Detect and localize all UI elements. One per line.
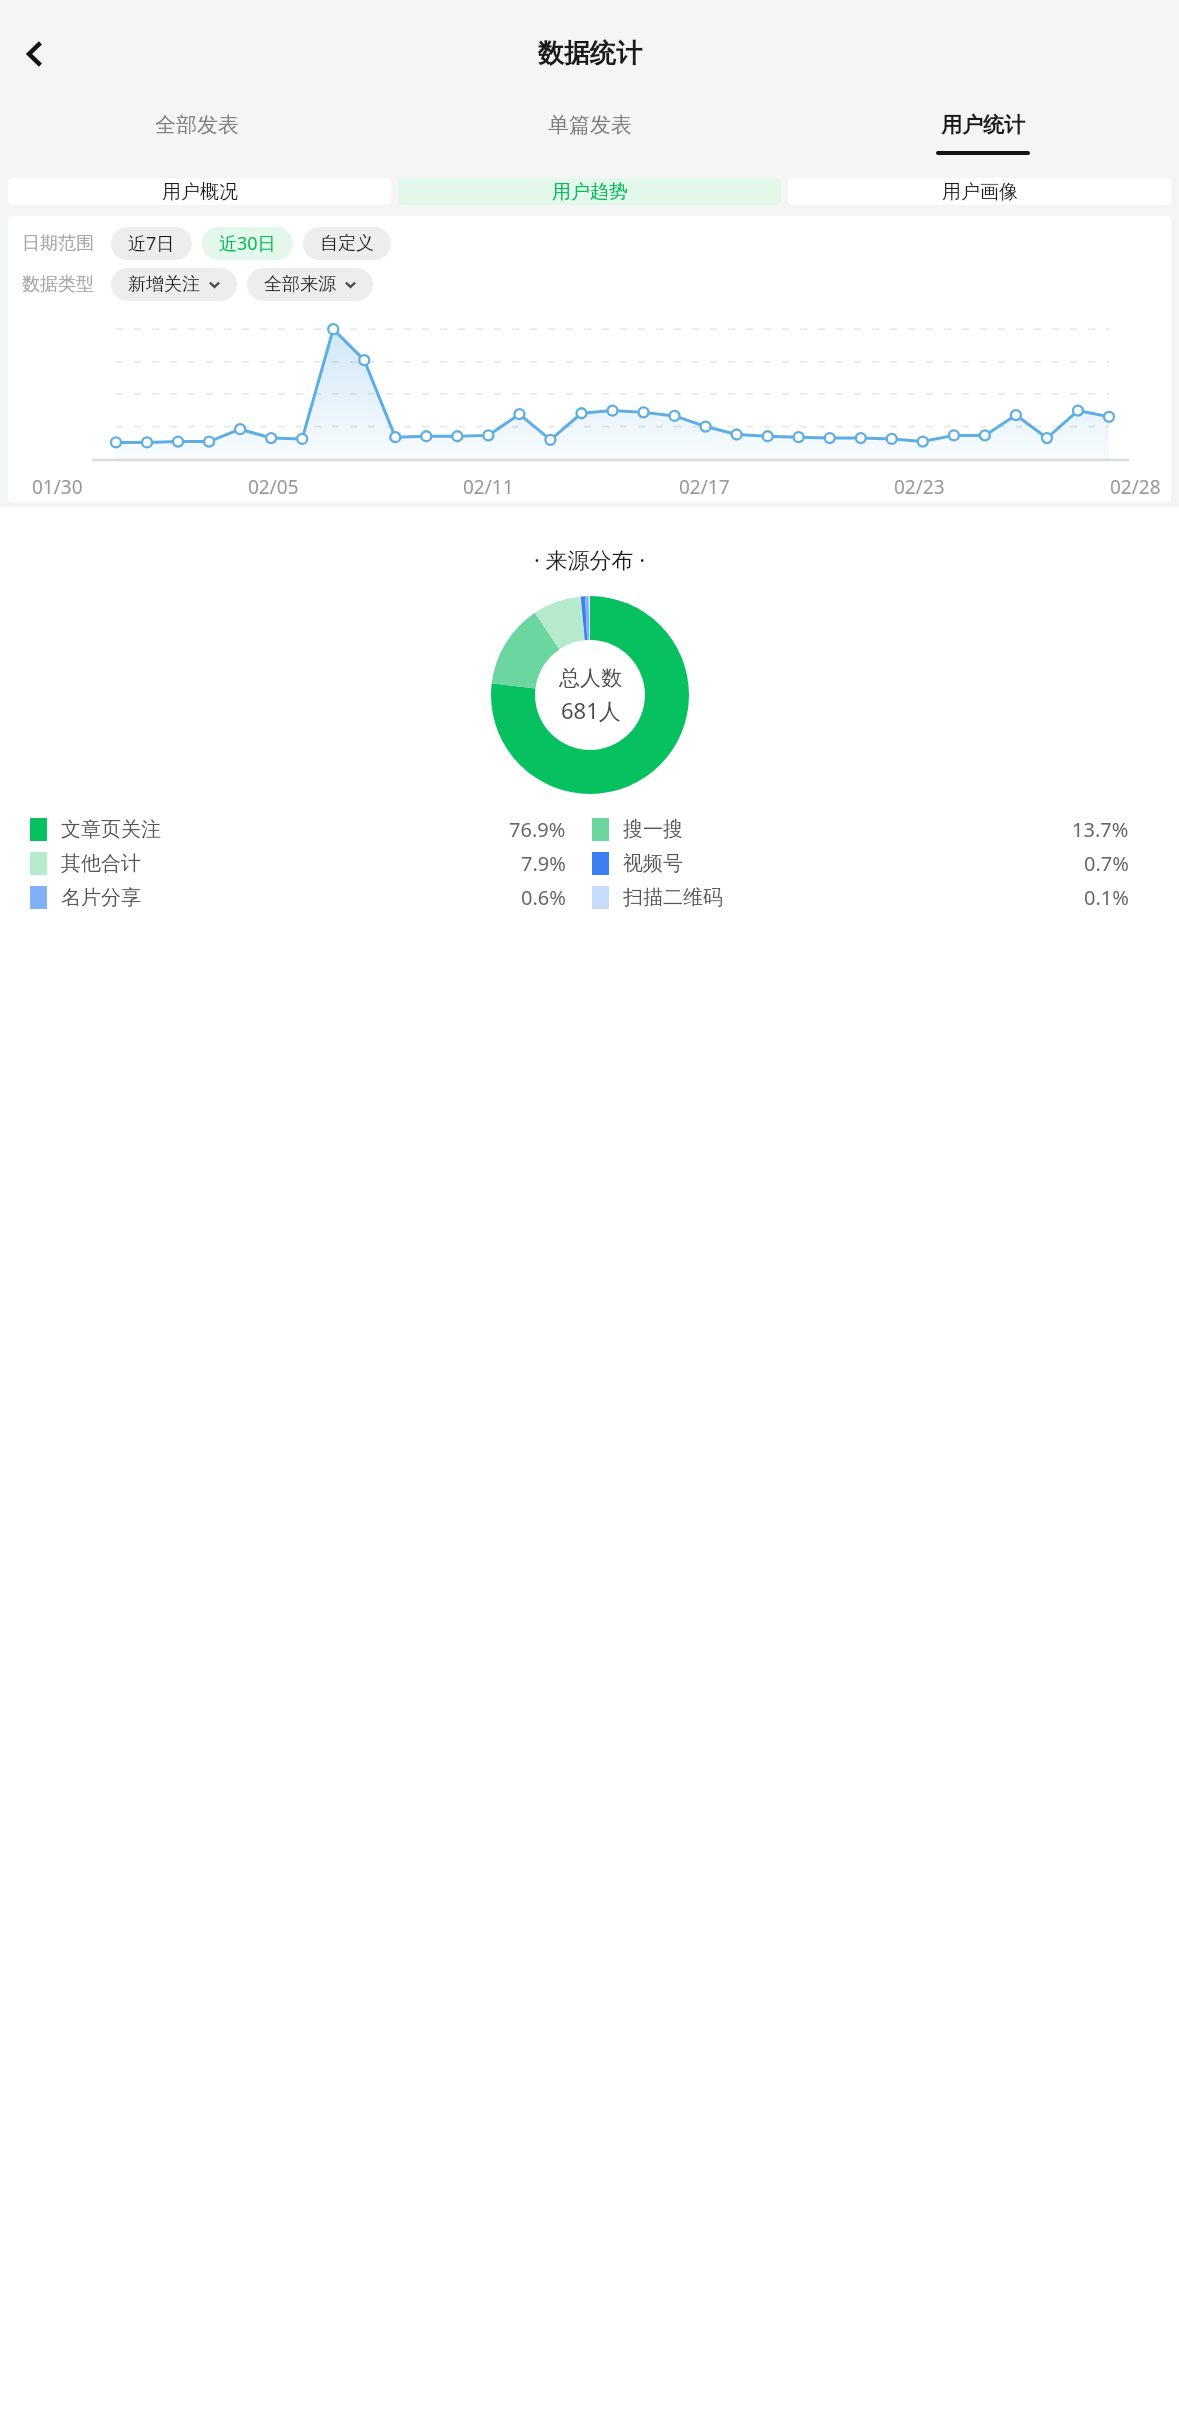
staticText: 数据统计	[538, 37, 642, 70]
staticText: 02/17	[679, 474, 730, 500]
button[interactable]: 近30日	[202, 227, 293, 260]
button[interactable]: 名片分享	[30, 880, 592, 914]
button[interactable]: 搜一搜	[592, 812, 1155, 846]
staticText: 视频号	[623, 851, 683, 876]
staticText: 数据类型	[22, 273, 94, 296]
staticText: 近7日	[128, 231, 175, 256]
staticText: 01/30	[32, 474, 83, 500]
staticText: 681人	[561, 695, 621, 725]
button[interactable]: 全部发表	[0, 107, 393, 169]
staticText: 全部来源	[264, 273, 336, 296]
button[interactable]: 其他合计	[30, 846, 592, 880]
staticText: 用户统计	[941, 112, 1025, 138]
button[interactable]: 文章页关注	[30, 812, 592, 846]
staticText: 其他合计	[61, 851, 141, 876]
staticText: 02/05	[248, 474, 299, 500]
staticText: 近30日	[219, 231, 276, 256]
button[interactable]: 用户画像	[788, 178, 1171, 205]
staticText: 7.9%	[521, 850, 566, 877]
button[interactable]: 全部来源	[247, 268, 373, 301]
staticText: 搜一搜	[623, 817, 683, 842]
staticText: 用户趋势	[552, 180, 628, 204]
staticText: 0.1%	[1084, 884, 1129, 911]
staticText: 全部发表	[155, 112, 239, 138]
staticText: 13.7%	[1072, 816, 1129, 843]
button[interactable]: 用户统计	[786, 107, 1179, 169]
staticText: 名片分享	[61, 885, 141, 910]
staticText: 用户画像	[942, 180, 1018, 204]
staticText: · 来源分布 ·	[0, 544, 1179, 574]
staticText: 扫描二维码	[623, 885, 723, 910]
staticText: 用户概况	[162, 180, 238, 204]
staticText: 02/11	[463, 474, 514, 500]
staticText: 自定义	[320, 232, 374, 255]
button[interactable]: 近7日	[111, 227, 192, 260]
staticText: 02/28	[1110, 474, 1161, 500]
staticText: 文章页关注	[61, 817, 161, 842]
button[interactable]: 自定义	[303, 227, 391, 260]
button[interactable]: Back	[6, 25, 64, 83]
button[interactable]: 扫描二维码	[592, 880, 1155, 914]
staticText: 0.7%	[1084, 850, 1129, 877]
button[interactable]: 用户趋势	[398, 178, 781, 205]
staticText: 76.9%	[509, 816, 566, 843]
staticText: 新增关注	[128, 273, 200, 296]
staticText: 02/23	[894, 474, 945, 500]
button[interactable]: 视频号	[592, 846, 1155, 880]
staticText: 0.6%	[521, 884, 566, 911]
staticText: 总人数	[559, 665, 622, 691]
button[interactable]: 用户概况	[8, 178, 391, 205]
button[interactable]: 单篇发表	[393, 107, 786, 169]
staticText: 单篇发表	[548, 112, 632, 138]
button[interactable]: 新增关注	[111, 268, 237, 301]
staticText: 日期范围	[22, 232, 94, 255]
